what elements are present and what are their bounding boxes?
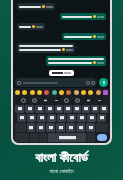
button[interactable]: Keyboard tool 3 (54, 98, 59, 103)
button[interactable]: Key (47, 114, 56, 122)
button[interactable]: Key (37, 114, 46, 122)
button[interactable]: Key (91, 105, 99, 113)
button[interactable]: Emoji (103, 90, 108, 95)
button[interactable]: Key (82, 105, 90, 113)
button[interactable]: Keyboard tool 0 (21, 98, 26, 103)
button[interactable]: Key (55, 105, 63, 113)
button[interactable]: Key (87, 114, 96, 122)
button[interactable]: Emoji (66, 90, 71, 95)
button[interactable]: Emoji (74, 90, 79, 95)
button[interactable] (46, 56, 106, 66)
button[interactable]: Keyboard tool 6 (86, 98, 91, 103)
button[interactable]: Key (35, 105, 44, 113)
button[interactable]: Key (17, 114, 26, 122)
button[interactable]: Key (77, 114, 86, 122)
button[interactable]: Key (46, 123, 55, 132)
button[interactable]: Emoji (52, 90, 57, 95)
button[interactable]: Enter (97, 134, 107, 141)
button[interactable]: Keyboard tool 1 (32, 98, 37, 103)
button[interactable]: Key (66, 123, 75, 132)
button[interactable]: Keyboard tool 2 (43, 98, 48, 103)
button[interactable]: Voice message (99, 78, 108, 87)
button[interactable]: Emoji (44, 90, 49, 95)
button[interactable]: Key (86, 123, 95, 132)
button[interactable] (62, 33, 106, 40)
button[interactable]: Key (64, 105, 72, 113)
button[interactable] (15, 78, 97, 87)
button[interactable]: Key (73, 105, 81, 113)
button[interactable]: Key (76, 123, 85, 132)
staticText: বাংলা কীবোর্ড (35, 148, 88, 166)
button[interactable]: Emoji (96, 90, 101, 95)
button[interactable]: Key (67, 114, 76, 122)
button[interactable]: Emoji (81, 90, 86, 95)
button[interactable]: Emoji (59, 90, 64, 95)
button[interactable]: Emoji (15, 90, 20, 95)
button[interactable]: Key (27, 114, 36, 122)
button[interactable]: Keyboard tool 7 (97, 98, 102, 103)
button[interactable]: Key (57, 114, 66, 122)
button[interactable]: Emoji (30, 90, 35, 95)
button[interactable]: Emoji (22, 90, 27, 95)
button[interactable]: Key (56, 123, 65, 132)
staticText: বাংলা মােবাইল (49, 167, 74, 174)
button[interactable]: Keyboard tool 4 (64, 98, 69, 103)
button[interactable] (60, 13, 106, 20)
button[interactable]: Keyboard tool 5 (75, 98, 80, 103)
button[interactable]: Key (15, 105, 24, 113)
button[interactable]: Key (25, 105, 34, 113)
button[interactable]: Emoji (37, 90, 42, 95)
button[interactable]: Key (36, 123, 45, 132)
button[interactable]: Key (97, 114, 106, 122)
button[interactable]: Key (27, 123, 35, 132)
button[interactable]: Emoji (88, 90, 93, 95)
button[interactable]: Key (100, 105, 108, 113)
button[interactable]: Key (45, 105, 54, 113)
button[interactable]: Key (48, 133, 86, 142)
button[interactable] (17, 43, 75, 53)
button[interactable] (17, 3, 55, 10)
button[interactable] (17, 23, 45, 30)
